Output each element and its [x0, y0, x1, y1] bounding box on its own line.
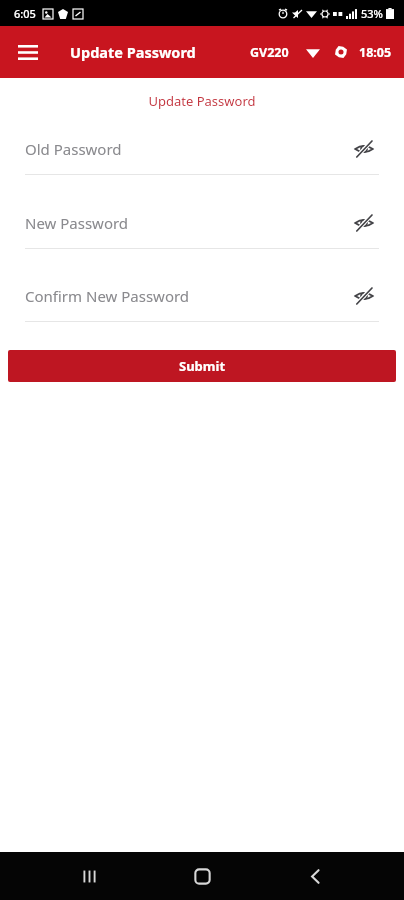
- button[interactable]: Home: [178, 852, 226, 900]
- button[interactable]: Show Confirm New Password: [349, 281, 379, 311]
- staticText: Update Password: [70, 42, 196, 62]
- button[interactable]: Show New Password: [349, 208, 379, 238]
- staticText: Confirm New Password: [25, 286, 349, 306]
- button[interactable]: Wi-Fi status: [303, 42, 323, 62]
- button[interactable]: Sync status: [331, 42, 351, 62]
- button[interactable]: Back: [291, 852, 339, 900]
- button[interactable]: Open navigation menu: [10, 34, 46, 70]
- button[interactable]: Show Old Password: [349, 134, 379, 164]
- staticText: Submit: [179, 357, 226, 375]
- staticText: 53%: [361, 6, 383, 21]
- staticText: 18:05: [359, 44, 392, 61]
- button[interactable]: Submit: [8, 350, 396, 382]
- staticText: Old Password: [25, 139, 349, 159]
- staticText: 6:05: [14, 6, 36, 21]
- button[interactable]: Recent apps: [65, 852, 113, 900]
- staticText: New Password: [25, 213, 349, 233]
- staticText: Update Password: [0, 92, 404, 110]
- staticText: GV220: [250, 44, 289, 61]
